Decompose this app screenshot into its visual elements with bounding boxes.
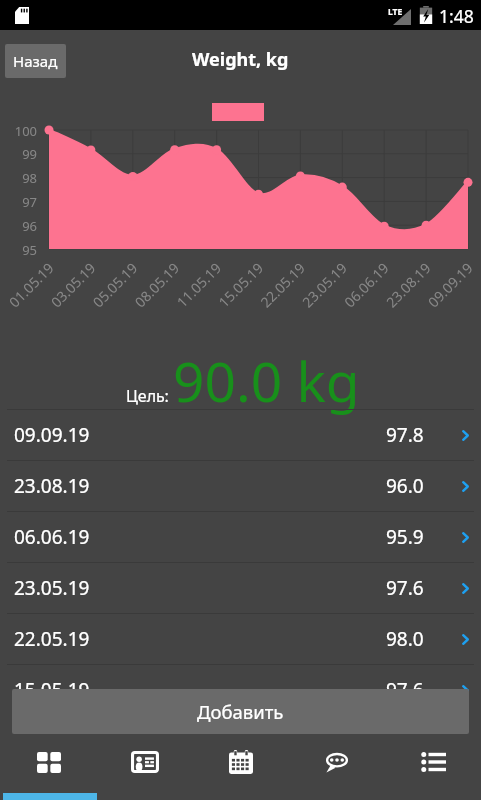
button[interactable]: 09.09.19 xyxy=(0,410,481,460)
staticText: Weight, kg xyxy=(192,47,289,72)
button[interactable]: 15.05.19 xyxy=(0,665,481,715)
staticText: 95.9 xyxy=(386,524,424,550)
button[interactable]: Dashboard xyxy=(0,742,97,782)
staticText: 96 xyxy=(5,217,37,235)
staticText: 97.6 xyxy=(386,677,424,703)
staticText: 23.08.19 xyxy=(14,473,90,499)
staticText: 22.05.19 xyxy=(14,626,90,652)
staticText: 99 xyxy=(5,145,37,163)
button[interactable]: Profile xyxy=(97,742,193,782)
button[interactable]: 23.08.19 xyxy=(0,461,481,511)
staticText: 98 xyxy=(5,169,37,187)
staticText: 100 xyxy=(5,122,37,140)
staticText: 97.8 xyxy=(386,422,424,448)
staticText: Назад xyxy=(13,51,58,71)
staticText: Добавить xyxy=(197,699,284,724)
button[interactable]: Messages xyxy=(289,742,385,782)
staticText: 95 xyxy=(5,241,37,259)
staticText: LTE xyxy=(388,6,403,18)
staticText: 90.0 kg xyxy=(173,343,360,418)
staticText: 15.05.19 xyxy=(14,677,90,703)
staticText: 23.05.19 xyxy=(14,575,90,601)
button[interactable]: 22.05.19 xyxy=(0,614,481,664)
staticText: 09.09.19 xyxy=(14,422,90,448)
button[interactable]: Назад xyxy=(5,44,66,78)
button[interactable]: Calendar xyxy=(193,742,289,782)
button[interactable]: 06.06.19 xyxy=(0,512,481,562)
button[interactable]: 23.05.19 xyxy=(0,563,481,613)
staticText: 1:48 xyxy=(439,4,474,28)
button[interactable]: List xyxy=(385,742,481,782)
staticText: Цель: xyxy=(126,385,169,407)
staticText: 98.0 xyxy=(386,626,424,652)
button[interactable]: Добавить xyxy=(12,689,469,734)
staticText: 06.06.19 xyxy=(14,524,90,550)
staticText: 97 xyxy=(5,193,37,211)
staticText: 96.0 xyxy=(386,473,424,499)
staticText: 97.6 xyxy=(386,575,424,601)
